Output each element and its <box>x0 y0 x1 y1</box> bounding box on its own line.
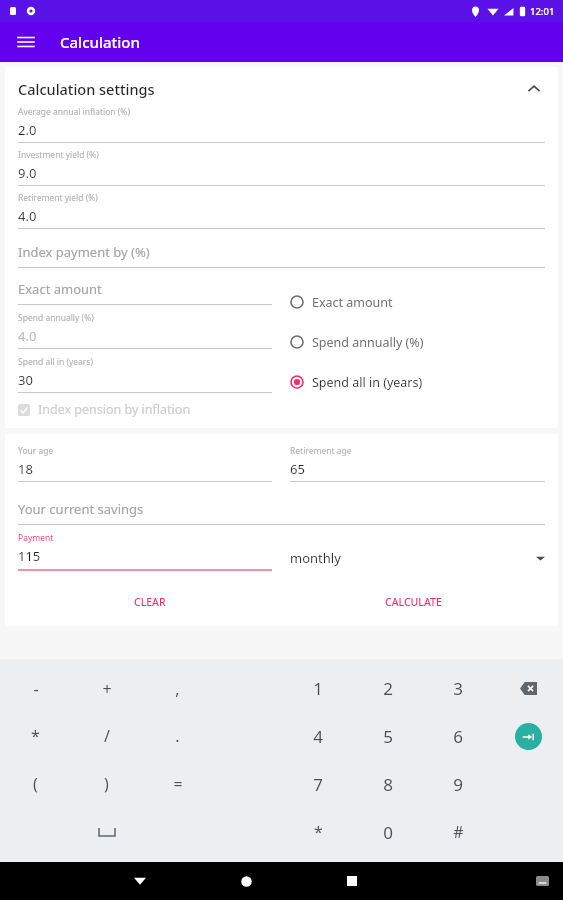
button[interactable]: Retirement yield (%) <box>18 192 545 229</box>
button[interactable]: Back <box>123 864 157 898</box>
staticText: ) <box>104 773 109 795</box>
button[interactable]: Investment yield (%) <box>18 149 545 186</box>
staticText: * <box>31 725 40 747</box>
button[interactable]: Your current savings <box>18 500 545 525</box>
staticText: / <box>104 725 110 747</box>
button[interactable]: 6 <box>423 712 493 760</box>
button[interactable]: 5 <box>353 712 423 760</box>
button[interactable]: Average annual inflation (%) <box>18 106 545 143</box>
staticText: 6 <box>453 725 463 748</box>
staticText: 115 <box>18 547 41 565</box>
staticText: CLEAR <box>134 595 166 609</box>
button[interactable]: CLEAR <box>18 589 281 615</box>
button[interactable]: Space <box>71 808 142 856</box>
staticText: Spend annually (%) <box>312 334 424 351</box>
button[interactable]: 4 <box>283 712 353 760</box>
staticText: # <box>453 821 464 843</box>
staticText: monthly <box>290 549 341 567</box>
staticText: Exact amount <box>312 294 393 311</box>
button[interactable]: , <box>142 665 213 712</box>
button[interactable]: 2 <box>353 665 423 712</box>
staticText: Spend annually (%) <box>18 312 94 324</box>
button[interactable]: 9 <box>423 760 493 808</box>
staticText: 3 <box>453 677 463 700</box>
button[interactable]: Next field <box>493 712 563 760</box>
staticText: 4 <box>313 725 323 748</box>
staticText: Exact amount <box>18 280 102 298</box>
staticText: = <box>173 773 183 795</box>
staticText: Average annual inflation (%) <box>18 106 130 118</box>
button[interactable]: = <box>142 760 213 808</box>
button[interactable]: Calculation settings <box>18 78 545 100</box>
staticText: Your current savings <box>18 500 144 518</box>
staticText: Index pension by inflation <box>38 401 191 418</box>
other: Collapse section <box>523 78 545 100</box>
button[interactable]: Spend annually (%) <box>290 322 545 362</box>
staticText: 9.0 <box>18 164 37 182</box>
staticText: CALCULATE <box>385 595 442 609</box>
staticText: 2.0 <box>18 121 37 139</box>
staticText: * <box>314 821 323 843</box>
staticText: 2 <box>383 677 393 700</box>
staticText: ( <box>33 773 38 795</box>
button[interactable]: 0 <box>353 808 423 856</box>
button[interactable]: 7 <box>283 760 353 808</box>
staticText: Index payment by (%) <box>18 243 150 261</box>
staticText: 0 <box>383 821 393 844</box>
staticText: Your age <box>18 445 54 457</box>
staticText: . <box>175 725 180 747</box>
button[interactable]: Spend all in (years) <box>290 362 545 402</box>
button[interactable]: ( <box>0 760 71 808</box>
staticText: + <box>102 678 112 700</box>
button[interactable]: Exact amount <box>18 280 272 305</box>
staticText: , <box>175 678 180 700</box>
button[interactable]: ) <box>71 760 142 808</box>
staticText: 18 <box>18 460 33 478</box>
button[interactable]: Index pension by inflation <box>18 401 272 418</box>
button[interactable]: Recent apps <box>335 864 369 898</box>
staticText: 12:01 <box>530 5 555 18</box>
button[interactable]: 8 <box>353 760 423 808</box>
staticText: Spend all in (years) <box>312 374 423 391</box>
button[interactable]: Your age <box>18 445 272 482</box>
button[interactable]: # <box>423 808 493 856</box>
button[interactable]: monthly <box>290 549 545 567</box>
button[interactable]: Payment <box>18 532 272 571</box>
staticText: Spend all in (years) <box>18 356 93 368</box>
staticText: 5 <box>383 725 393 748</box>
button[interactable]: Exact amount <box>290 282 545 322</box>
button[interactable]: Spend annually (%) <box>18 312 272 349</box>
button[interactable]: Spend all in (years) <box>18 356 272 393</box>
button[interactable]: CALCULATE <box>281 589 545 615</box>
staticText: 65 <box>290 460 305 478</box>
button[interactable]: Delete <box>493 665 563 712</box>
button[interactable]: * <box>283 808 353 856</box>
staticText: Calculation settings <box>18 79 155 99</box>
staticText: 4.0 <box>18 327 37 345</box>
staticText: Payment <box>18 532 54 544</box>
staticText: 9 <box>453 773 463 796</box>
button[interactable]: + <box>71 665 142 712</box>
staticText: 7 <box>313 773 323 796</box>
button[interactable]: * <box>0 712 71 760</box>
staticText: 30 <box>18 371 33 389</box>
button[interactable]: . <box>142 712 213 760</box>
button[interactable]: Retirement age <box>290 445 545 482</box>
button[interactable]: Switch keyboard <box>527 866 557 896</box>
staticText: - <box>33 678 39 700</box>
staticText: 8 <box>383 773 393 796</box>
button[interactable]: - <box>0 665 71 712</box>
staticText: Retirement age <box>290 445 352 457</box>
button[interactable]: Home <box>229 864 263 898</box>
staticText: Investment yield (%) <box>18 149 99 161</box>
button[interactable]: 3 <box>423 665 493 712</box>
button[interactable]: Index payment by (%) <box>18 243 545 268</box>
staticText: 1 <box>313 677 323 700</box>
staticText: Retirement yield (%) <box>18 192 98 204</box>
button[interactable]: 1 <box>283 665 353 712</box>
button[interactable]: Open navigation menu <box>14 30 38 54</box>
staticText: Calculation <box>60 32 140 52</box>
button[interactable]: / <box>71 712 142 760</box>
staticText: 4.0 <box>18 207 37 225</box>
